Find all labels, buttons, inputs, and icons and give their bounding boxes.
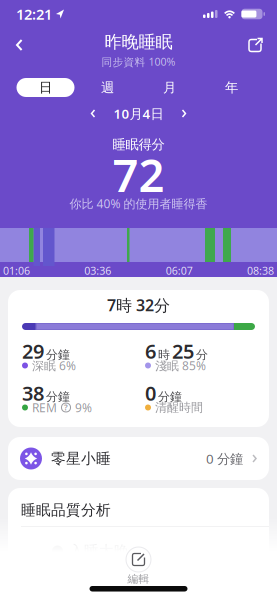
staticText: 你比 40% 的使用者睡得香 <box>69 195 207 211</box>
button[interactable]: 週 <box>76 78 138 97</box>
staticText: 6 <box>145 338 156 364</box>
staticText: 0 <box>145 380 156 406</box>
staticText: 年 <box>225 79 238 96</box>
button[interactable]: 日 <box>16 78 74 97</box>
staticText: 10月4日 <box>113 105 163 122</box>
staticText: 月 <box>163 79 176 96</box>
button[interactable]: Previous day <box>84 103 101 124</box>
staticText: 日 <box>39 79 52 96</box>
staticText: 零星小睡 <box>51 449 111 467</box>
staticText: ? <box>64 402 68 413</box>
button[interactable]: 月 <box>138 78 200 97</box>
staticText: 分鐘 <box>46 347 70 362</box>
staticText: 編輯 <box>127 572 149 585</box>
staticText: 38 <box>22 380 44 406</box>
staticText: 深眠 6% <box>32 357 76 373</box>
button[interactable]: Share <box>242 31 269 58</box>
staticText: 分鐘 <box>46 389 70 404</box>
button[interactable]: Back <box>8 31 31 59</box>
staticText: 同步資料 100% <box>101 55 175 69</box>
staticText: 01:06 <box>3 263 30 278</box>
staticText: 分鐘 <box>158 389 182 404</box>
staticText: 淺眠 85% <box>155 357 206 373</box>
staticText: 25 <box>172 338 194 364</box>
staticText: 03:36 <box>84 263 111 278</box>
staticText: 72 <box>112 144 164 205</box>
staticText: 時 <box>158 347 170 362</box>
button[interactable]: 編輯 <box>126 547 151 598</box>
staticText: 7時 32分 <box>107 294 170 316</box>
staticText: 睡眠品質分析 <box>21 501 111 519</box>
staticText: 06:07 <box>166 263 193 278</box>
staticText: 清醒時間 <box>155 400 203 415</box>
button[interactable]: Next day <box>175 103 192 124</box>
staticText: 12:21 <box>16 4 52 24</box>
staticText: 08:38 <box>247 263 274 278</box>
staticText: REM <box>32 399 57 415</box>
staticText: 9% <box>75 399 92 415</box>
staticText: 昨晚睡眠 <box>104 31 172 53</box>
staticText: 0 分鐘 <box>206 450 243 467</box>
staticText: 分 <box>196 347 208 362</box>
staticText: 29 <box>22 338 44 364</box>
staticText: 睡眠得分 <box>112 136 164 153</box>
button[interactable]: 零星小睡 <box>8 437 269 480</box>
staticText: 週 <box>101 79 114 96</box>
button[interactable]: 年 <box>200 78 262 97</box>
button[interactable]: 入睡太晚 <box>8 527 269 560</box>
